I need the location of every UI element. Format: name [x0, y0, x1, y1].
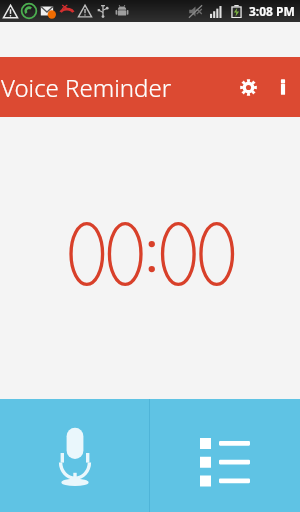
button[interactable]: Settings	[230, 69, 266, 105]
button[interactable]: About	[266, 70, 300, 104]
button[interactable]: Record voice reminder	[0, 399, 149, 512]
staticText: 3:08 PM	[249, 3, 295, 19]
button[interactable]: Reminder list	[150, 399, 300, 512]
staticText: Voice Reminder	[1, 71, 172, 104]
